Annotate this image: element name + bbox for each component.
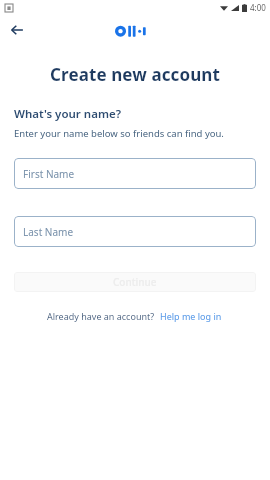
staticText: What's your name?: [14, 106, 121, 122]
button[interactable]: Back: [4, 17, 30, 43]
button[interactable]: Help me log in: [159, 308, 223, 324]
staticText: 4:00: [250, 2, 266, 13]
staticText: Enter your name below so friends can fin…: [14, 127, 224, 140]
other: Olli logo: [115, 24, 155, 37]
button[interactable]: First Name: [14, 158, 256, 189]
staticText: Help me log in: [160, 310, 222, 322]
staticText: Create new account: [0, 63, 270, 86]
staticText: Last Name: [23, 225, 74, 239]
staticText: Continue: [113, 275, 157, 289]
button[interactable]: Last Name: [14, 216, 256, 247]
staticText: Already have an account?: [47, 310, 155, 322]
staticText: First Name: [23, 167, 75, 181]
